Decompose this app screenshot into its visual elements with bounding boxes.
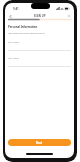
button[interactable]: Close [65,12,73,20]
button[interactable]: First Name [8,41,71,51]
staticText: SIGN UP [34,14,46,17]
staticText: First Name [8,41,19,44]
staticText: Last Name [8,57,19,60]
staticText: 9:41 [13,7,19,11]
button[interactable]: Last Name [8,57,71,67]
staticText: Personal Information [8,25,38,29]
staticText: Your details must match those on your ID [8,32,45,35]
staticText: Next [36,141,43,144]
button[interactable]: Back [6,12,14,20]
button[interactable]: Next [8,139,71,146]
